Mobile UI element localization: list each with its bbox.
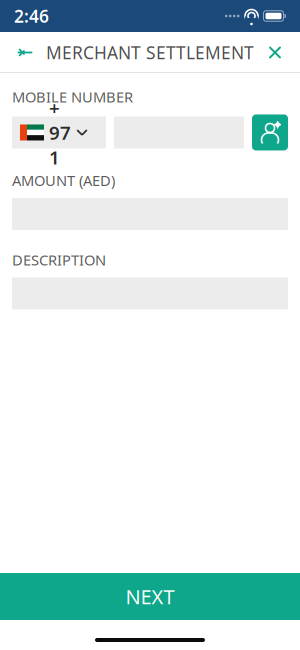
staticText: 2:46 [14,4,49,27]
button[interactable]: Close [254,32,296,73]
staticText: + 971 [49,95,71,170]
staticText: AMOUNT (AED) [12,170,115,190]
staticText: NEXT [125,583,174,610]
staticText: ✦ [271,117,283,133]
button[interactable]: + 971 [12,116,106,148]
button[interactable]: Back [4,32,46,73]
staticText: MERCHANT SETTLEMENT [46,41,254,64]
button[interactable]: Pick contact [252,114,288,150]
staticText: MOBILE NUMBER [12,87,133,106]
staticText: DESCRIPTION [12,250,106,269]
button[interactable]: NEXT [0,573,300,620]
